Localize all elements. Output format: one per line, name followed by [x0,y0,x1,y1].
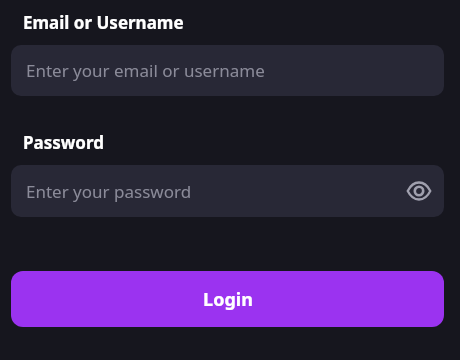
button[interactable]: Show password [401,173,437,209]
staticText: Enter your email or username [26,59,265,82]
button[interactable]: Enter your password [11,165,444,217]
staticText: Enter your password [26,180,192,203]
staticText: Password [23,131,104,154]
staticText: Login [203,287,253,312]
button[interactable]: Login [11,271,444,327]
button[interactable]: Enter your email or username [11,45,444,96]
staticText: Email or Username [23,11,184,34]
